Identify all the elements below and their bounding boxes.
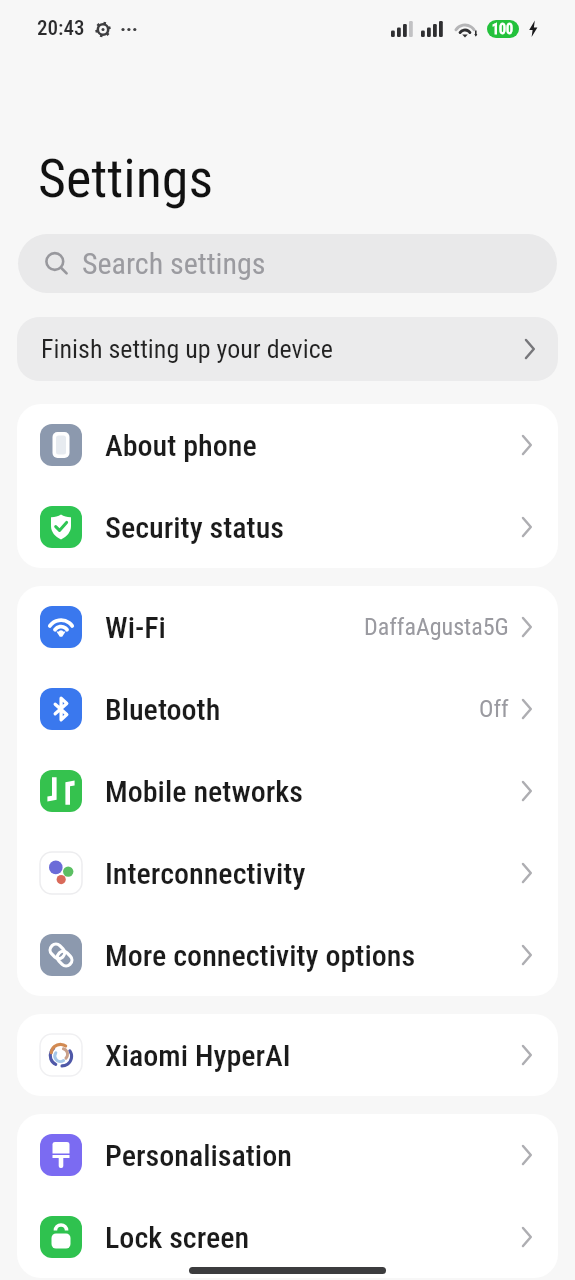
staticText: Mobile networks	[105, 774, 303, 809]
button[interactable]: Finish setting up your device	[17, 317, 558, 381]
staticText: 100	[492, 21, 514, 37]
button[interactable]: Personalisation	[17, 1114, 558, 1196]
staticText: Off	[479, 695, 509, 723]
staticText: Lock screen	[105, 1220, 250, 1255]
staticText: About phone	[105, 428, 257, 463]
button[interactable]: Lock screen	[17, 1196, 558, 1278]
staticText: Security status	[105, 510, 284, 545]
staticText: 20:43	[37, 16, 85, 41]
staticText: Wi-Fi	[105, 610, 166, 645]
staticText: Interconnectivity	[105, 856, 306, 891]
button[interactable]: Bluetooth	[17, 668, 558, 750]
button[interactable]: Search settings	[18, 234, 557, 293]
staticText: Personalisation	[105, 1138, 292, 1173]
button[interactable]: Mobile networks	[17, 750, 558, 832]
staticText: More connectivity options	[105, 938, 416, 973]
staticText: Xiaomi HyperAI	[105, 1038, 291, 1073]
button[interactable]: About phone	[17, 404, 558, 486]
staticText: DaffaAgusta5G	[364, 613, 509, 641]
staticText: Search settings	[82, 246, 266, 281]
button[interactable]: Interconnectivity	[17, 832, 558, 914]
staticText: Settings	[38, 147, 214, 210]
button[interactable]: Security status	[17, 486, 558, 568]
staticText: Bluetooth	[105, 692, 221, 727]
button[interactable]: Xiaomi HyperAI	[17, 1014, 558, 1096]
staticText: Finish setting up your device	[41, 334, 333, 364]
button[interactable]: Wi-Fi	[17, 586, 558, 668]
button[interactable]: More connectivity options	[17, 914, 558, 996]
